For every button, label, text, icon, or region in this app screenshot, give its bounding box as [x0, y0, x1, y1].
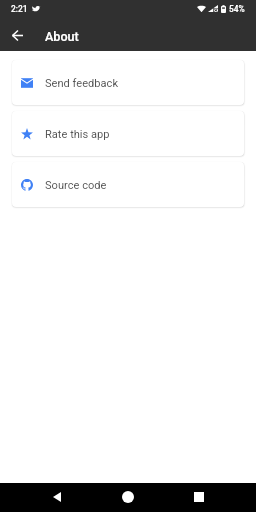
button[interactable]: Recent apps [180, 483, 218, 512]
staticText: Rate this app [45, 128, 110, 141]
button[interactable]: Source code [12, 162, 244, 207]
button[interactable]: Send feedback [12, 60, 244, 105]
staticText: 54% [229, 4, 245, 14]
button[interactable]: Back [38, 483, 76, 512]
button[interactable]: Navigate up [2, 20, 32, 52]
staticText: Source code [45, 179, 107, 192]
staticText: Send feedback [45, 77, 119, 90]
staticText: About [45, 29, 79, 44]
staticText: 2:21 [11, 4, 28, 14]
button[interactable]: Home [109, 483, 147, 512]
button[interactable]: Rate this app [12, 111, 244, 156]
